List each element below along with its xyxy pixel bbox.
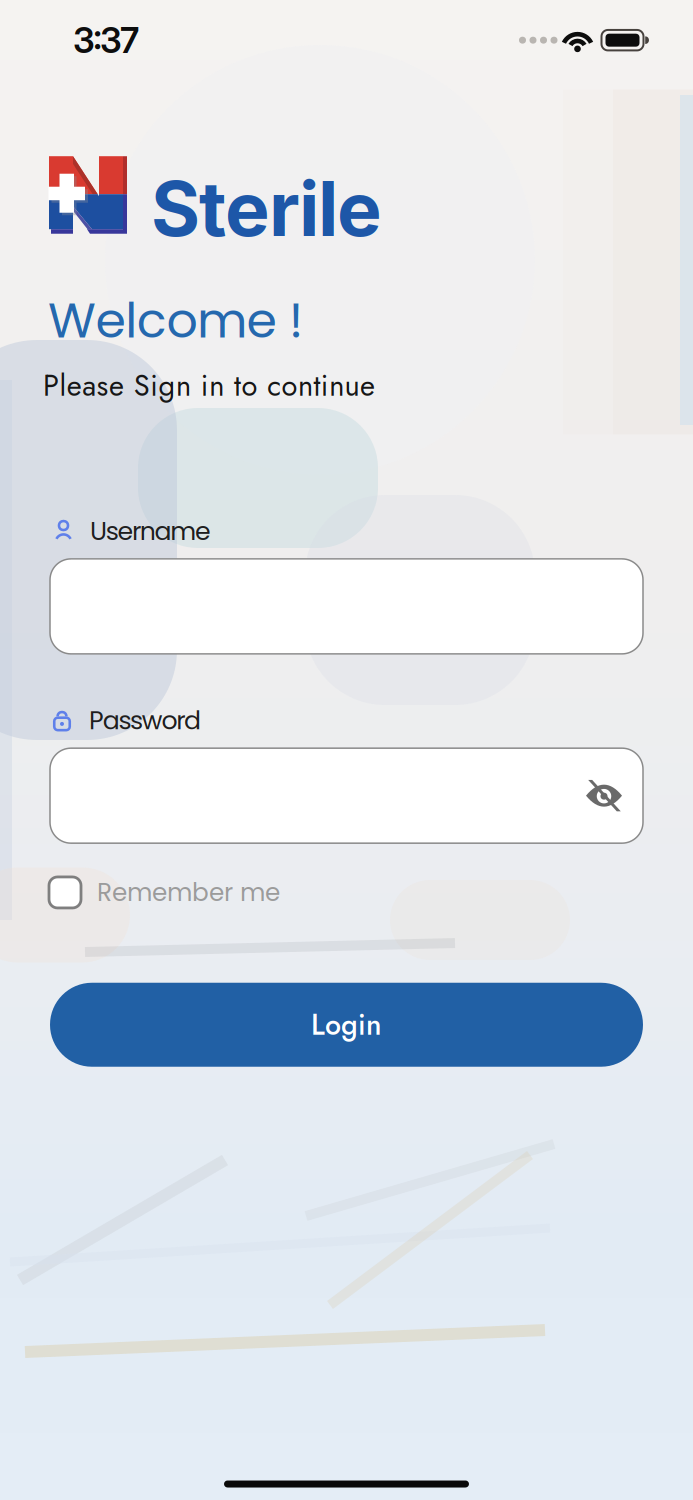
staticText: Username (90, 514, 211, 549)
staticText: Sterile (151, 163, 382, 254)
staticText: Password (89, 703, 201, 738)
button[interactable]: Remember me (49, 875, 280, 910)
staticText: Remember me (97, 875, 280, 910)
staticText: Login (311, 1004, 382, 1045)
staticText: Please Sign in to continue (43, 365, 375, 407)
button[interactable]: Show password (586, 779, 623, 812)
staticText: 3:37 (73, 19, 139, 61)
staticText: Welcome ! (48, 286, 304, 355)
button[interactable]: Login (50, 983, 643, 1067)
